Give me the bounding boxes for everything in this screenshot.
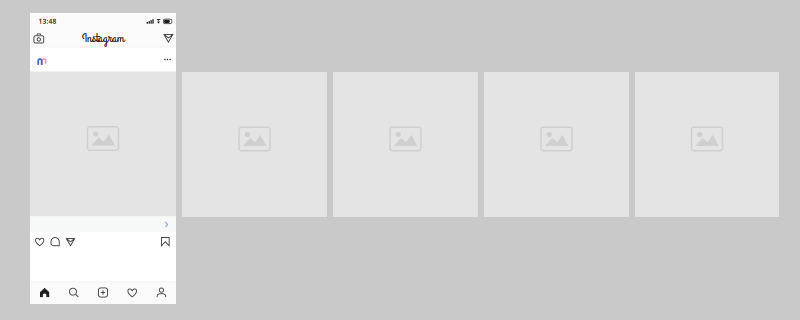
button[interactable]: Like xyxy=(32,233,47,250)
button[interactable]: Direct messages xyxy=(158,30,176,47)
button[interactable]: Share xyxy=(63,233,78,250)
staticText: Instagram xyxy=(82,29,124,47)
button[interactable]: Comment xyxy=(47,233,63,250)
button[interactable]: Activity xyxy=(118,281,147,303)
button[interactable]: Profile picture xyxy=(33,47,49,71)
button[interactable]: More options xyxy=(160,47,174,71)
button[interactable]: Profile xyxy=(147,281,176,303)
button[interactable]: Search xyxy=(59,281,88,303)
staticText: 13:48 xyxy=(38,17,56,26)
button[interactable]: Camera xyxy=(30,30,48,47)
button[interactable]: Save xyxy=(158,233,173,250)
button[interactable]: Create xyxy=(88,281,118,303)
button[interactable]: Home xyxy=(30,281,59,303)
button[interactable]: Next photo xyxy=(160,216,173,232)
